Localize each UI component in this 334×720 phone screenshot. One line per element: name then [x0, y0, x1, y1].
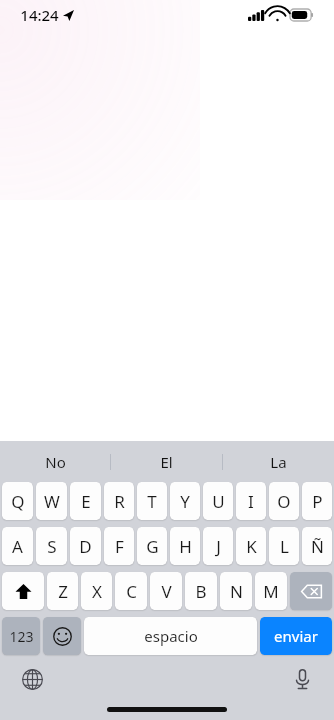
staticText: K: [246, 535, 257, 558]
staticText: P: [312, 490, 323, 513]
button[interactable]: R: [104, 482, 134, 520]
staticText: espacio: [144, 626, 198, 646]
button[interactable]: espacio: [84, 617, 257, 655]
staticText: El: [160, 452, 173, 472]
button[interactable]: W: [36, 482, 67, 520]
button[interactable]: K: [236, 527, 266, 565]
button[interactable]: Q: [2, 482, 33, 520]
staticText: V: [161, 580, 172, 603]
staticText: No: [45, 452, 66, 472]
button[interactable]: La: [223, 441, 334, 482]
staticText: Q: [11, 490, 25, 513]
button[interactable]: L: [269, 527, 299, 565]
button[interactable]: F: [104, 527, 134, 565]
staticText: I: [248, 490, 254, 513]
button[interactable]: U: [203, 482, 233, 520]
button[interactable]: Shift: [2, 572, 44, 610]
staticText: T: [147, 490, 157, 513]
staticText: enviar: [274, 626, 318, 646]
staticText: J: [216, 535, 221, 558]
button[interactable]: Change keyboard language: [14, 661, 50, 697]
button[interactable]: A: [2, 527, 33, 565]
button[interactable]: Emoji: [43, 617, 81, 655]
staticText: Y: [180, 490, 190, 513]
staticText: A: [12, 535, 23, 558]
button[interactable]: 123: [2, 617, 40, 655]
staticText: F: [115, 535, 124, 558]
button[interactable]: Dictation: [284, 661, 320, 697]
staticText: D: [79, 535, 92, 558]
staticText: U: [212, 490, 225, 513]
staticText: R: [114, 490, 125, 513]
button[interactable]: G: [137, 527, 167, 565]
button[interactable]: El: [111, 441, 222, 482]
button[interactable]: No: [0, 441, 110, 482]
button[interactable]: Ñ: [302, 527, 332, 565]
button[interactable]: Y: [170, 482, 200, 520]
button[interactable]: M: [255, 572, 287, 610]
button[interactable]: I: [236, 482, 266, 520]
button[interactable]: X: [81, 572, 112, 610]
staticText: X: [92, 580, 102, 603]
button[interactable]: T: [137, 482, 167, 520]
button[interactable]: P: [302, 482, 332, 520]
button[interactable]: B: [185, 572, 217, 610]
button[interactable]: J: [203, 527, 233, 565]
button[interactable]: S: [36, 527, 67, 565]
staticText: N: [230, 580, 243, 603]
staticText: S: [47, 535, 57, 558]
button[interactable]: V: [150, 572, 182, 610]
staticText: M: [263, 580, 279, 603]
staticText: E: [81, 490, 91, 513]
staticText: W: [44, 490, 60, 513]
staticText: B: [195, 580, 207, 603]
button[interactable]: N: [220, 572, 252, 610]
button[interactable]: E: [70, 482, 101, 520]
staticText: O: [277, 490, 291, 513]
button[interactable]: Backspace: [290, 572, 332, 610]
staticText: Z: [58, 580, 68, 603]
button[interactable]: C: [115, 572, 147, 610]
button[interactable]: D: [70, 527, 101, 565]
staticText: La: [270, 452, 287, 472]
button[interactable]: H: [170, 527, 200, 565]
staticText: C: [126, 580, 137, 603]
staticText: L: [280, 535, 289, 558]
staticText: Ñ: [311, 535, 324, 558]
staticText: 14:24: [20, 5, 59, 25]
button[interactable]: Z: [47, 572, 78, 610]
button[interactable]: enviar: [260, 617, 332, 655]
staticText: G: [146, 535, 159, 558]
staticText: 123: [9, 627, 34, 646]
button[interactable]: O: [269, 482, 299, 520]
staticText: H: [179, 535, 192, 558]
